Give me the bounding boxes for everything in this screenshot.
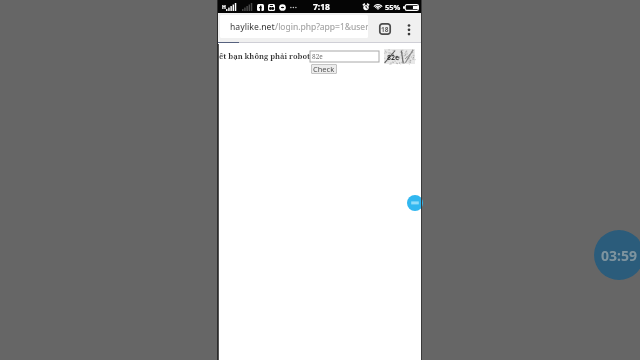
button[interactable]: Assistive touch (407, 195, 423, 211)
button[interactable]: Check (311, 64, 337, 74)
staticText: 7:18 (313, 1, 330, 13)
staticText: Check (313, 64, 335, 74)
staticText: ết bạn không phải robot (219, 51, 311, 61)
button[interactable]: Countdown timer (594, 230, 640, 280)
staticText: H (222, 4, 226, 11)
button[interactable]: 82e (310, 51, 379, 62)
button[interactable]: More options (399, 19, 419, 39)
staticText: 82e (312, 52, 323, 61)
staticText: haylike.net (230, 21, 275, 33)
staticText: /login.php?app=1&user (275, 21, 368, 33)
button[interactable]: haylike.net (220, 15, 368, 38)
button[interactable]: Tabs, 18 open (375, 19, 395, 39)
staticText: 18 (381, 25, 389, 34)
staticText: 03:59 (601, 246, 637, 265)
staticText: 82e (387, 53, 400, 63)
staticText: 55% (385, 2, 401, 12)
